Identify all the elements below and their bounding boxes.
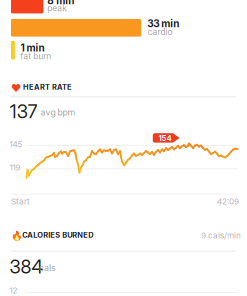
staticText: cals [39,262,56,273]
staticText: 154 [158,133,171,143]
staticText: 384 [10,255,44,278]
staticText: 8 min [47,0,74,7]
staticText: peak [47,3,67,13]
staticText: 42:09 [217,196,239,206]
staticText: HEART RATE [23,82,72,91]
staticText: CALORIES BURNED [22,230,93,239]
staticText: fat burn [20,51,51,61]
staticText: 🔥 [11,230,23,241]
staticText: 12 [10,285,18,295]
staticText: cardio [147,27,172,37]
staticText: ♥ [11,82,21,94]
staticText: 33 min [147,18,179,30]
staticText: 119 [10,162,21,172]
staticText: Start [11,196,30,206]
staticText: 9 cals/min [201,230,241,240]
staticText: 137 [10,100,38,123]
staticText: 1 min [20,42,44,54]
staticText: avg bpm [40,107,75,118]
staticText: 145 [10,139,23,149]
